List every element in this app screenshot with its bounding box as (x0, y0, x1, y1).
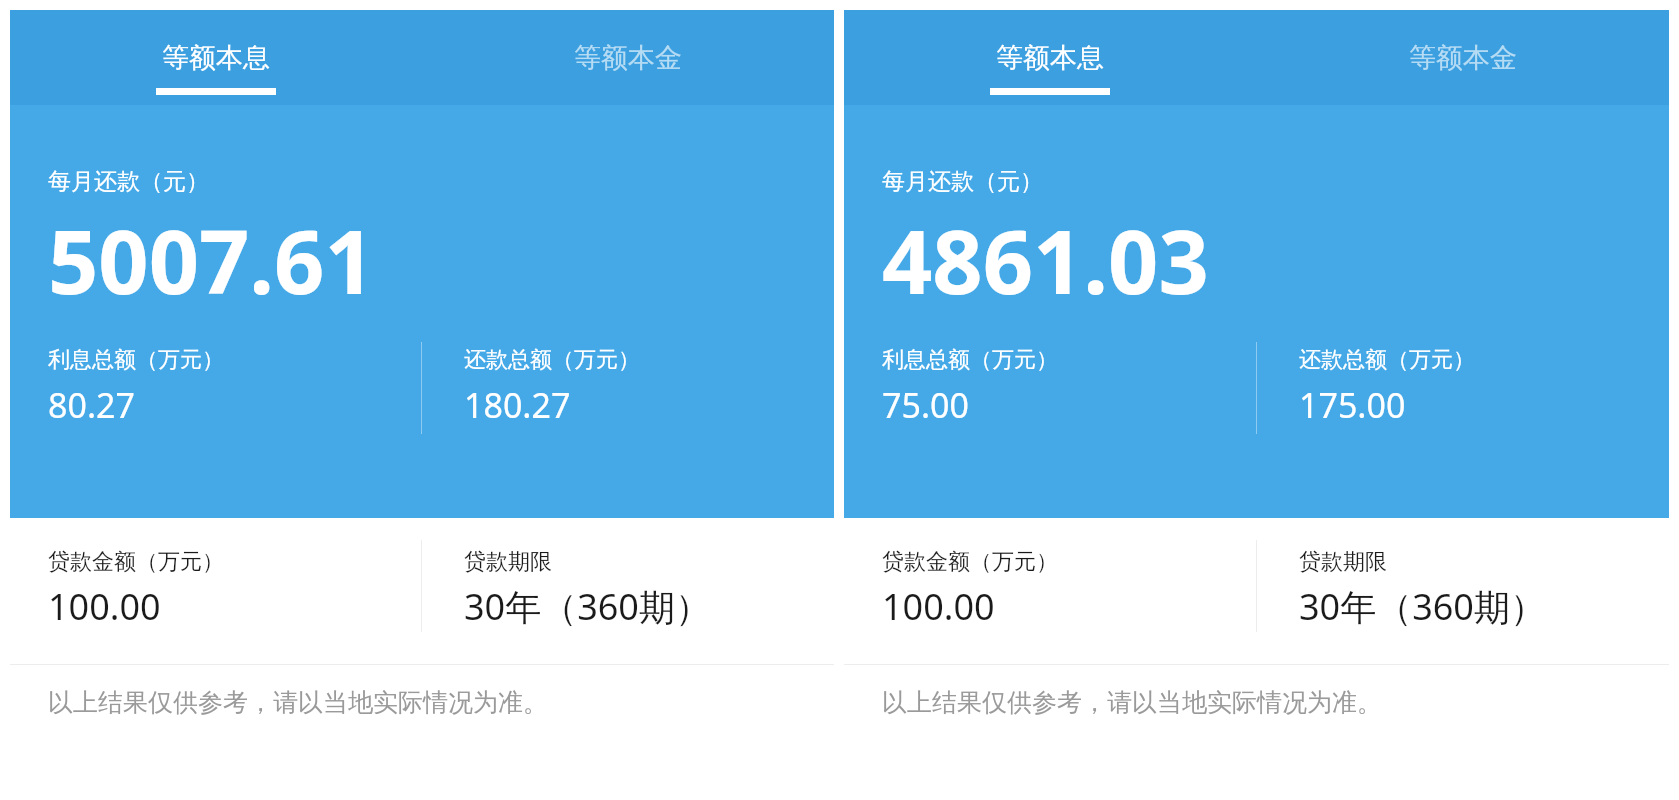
staticText: 175.00 (1299, 382, 1406, 428)
staticText: 贷款金额（万元） (48, 548, 224, 576)
staticText: 还款总额（万元） (1299, 346, 1475, 374)
staticText: 利息总额（万元） (882, 346, 1058, 374)
staticText: 100.00 (48, 582, 161, 631)
staticText: 每月还款（元） (882, 167, 1043, 196)
staticText: 贷款期限 (464, 548, 552, 576)
button[interactable]: 等额本金 (1256, 10, 1669, 105)
staticText: 贷款期限 (1299, 548, 1387, 576)
staticText: 贷款金额（万元） (882, 548, 1058, 576)
staticText: 4861.03 (882, 200, 1209, 320)
staticText: 每月还款（元） (48, 167, 209, 196)
staticText: 还款总额（万元） (464, 346, 640, 374)
button[interactable]: 等额本息 (844, 10, 1256, 105)
staticText: 等额本金 (574, 41, 682, 75)
staticText: 以上结果仅供参考，请以当地实际情况为准。 (882, 687, 1382, 718)
staticText: 等额本息 (162, 41, 270, 75)
staticText: 180.27 (464, 382, 571, 428)
staticText: 80.27 (48, 382, 135, 428)
staticText: 利息总额（万元） (48, 346, 224, 374)
staticText: 以上结果仅供参考，请以当地实际情况为准。 (48, 687, 548, 718)
staticText: 等额本息 (996, 41, 1104, 75)
button[interactable]: 等额本金 (422, 10, 834, 105)
staticText: 100.00 (882, 582, 995, 631)
staticText: 30年（360期） (1299, 582, 1546, 631)
staticText: 等额本金 (1409, 41, 1517, 75)
staticText: 5007.61 (48, 200, 375, 320)
button[interactable]: 等额本息 (10, 10, 422, 105)
staticText: 75.00 (882, 382, 969, 428)
staticText: 30年（360期） (464, 582, 711, 631)
